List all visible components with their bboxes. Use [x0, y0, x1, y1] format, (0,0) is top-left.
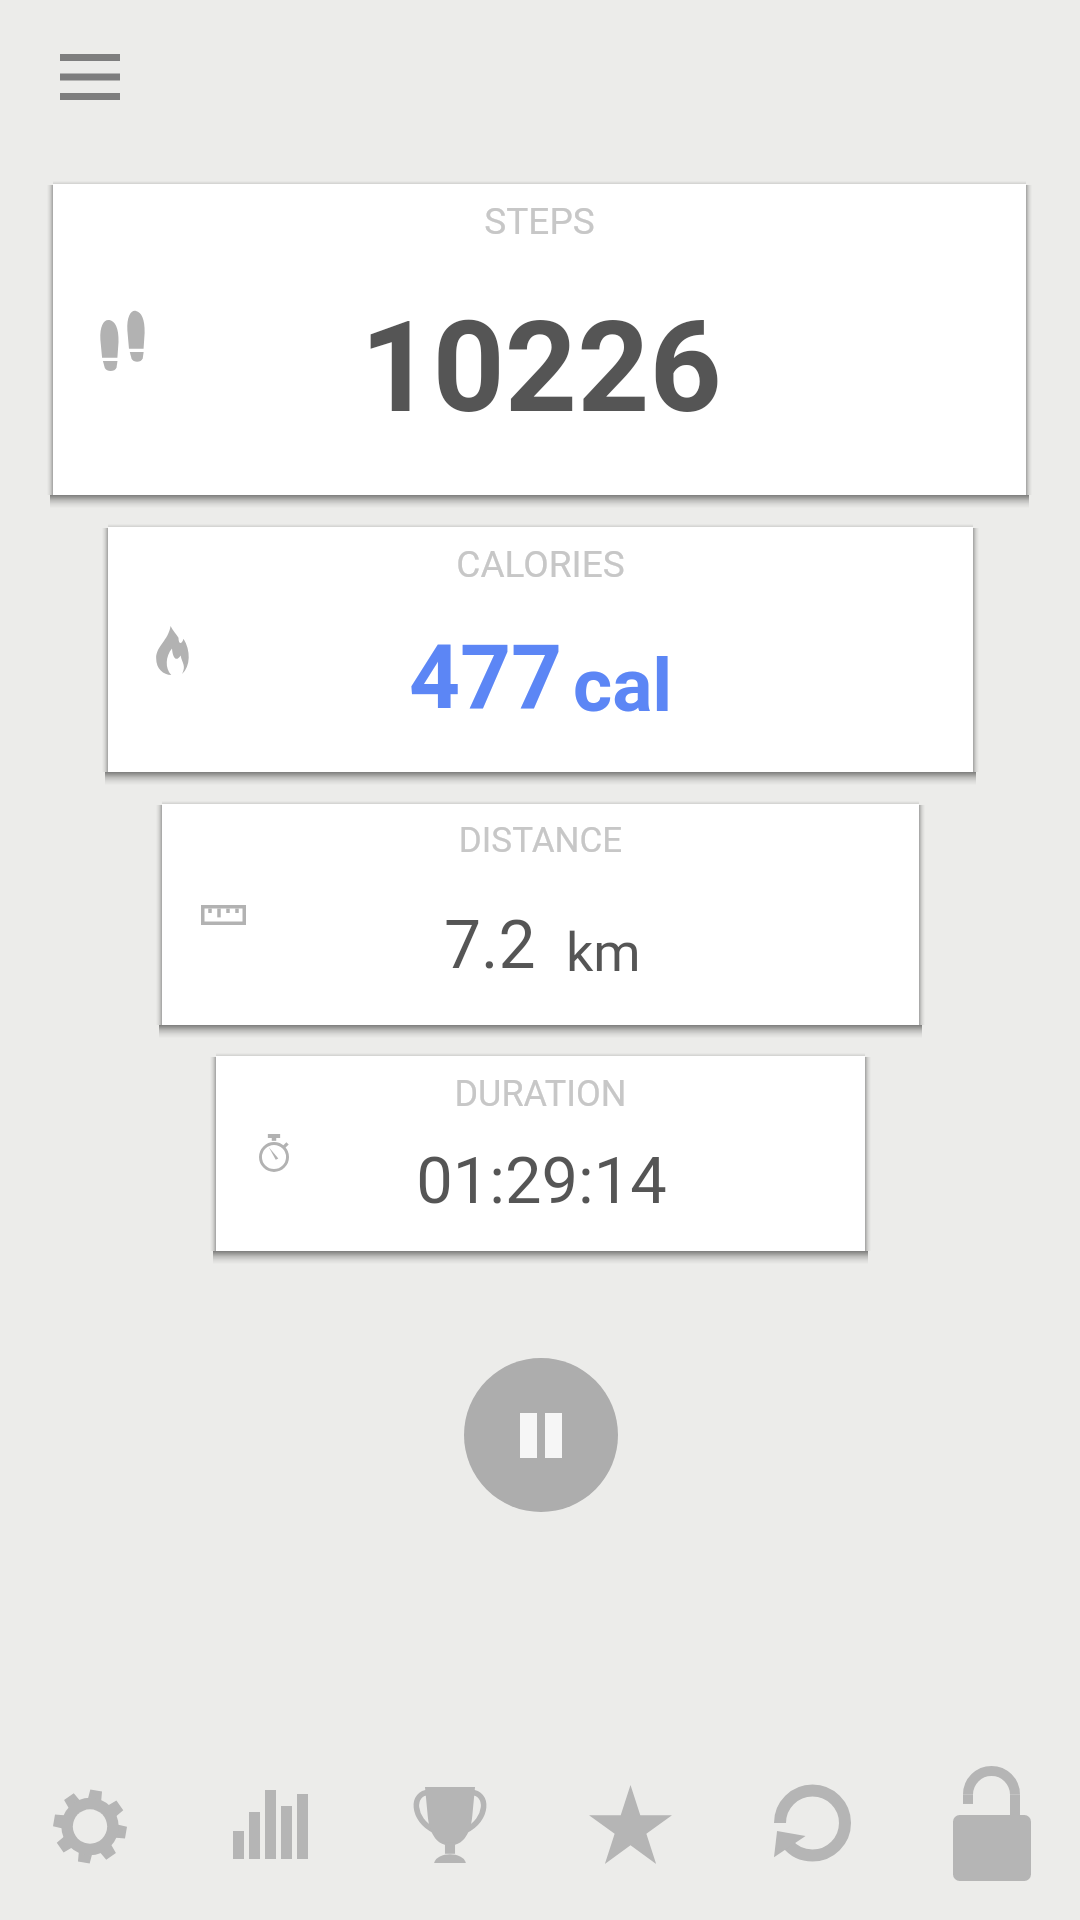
staticText: DISTANCE — [162, 820, 919, 861]
staticText: 7.2 — [444, 907, 536, 984]
staticText: 10226 — [360, 294, 722, 442]
staticText: km — [566, 921, 641, 984]
button[interactable]: CALORIES — [108, 527, 973, 772]
staticText: 01:29:14 — [416, 1143, 667, 1219]
button[interactable]: STEPS — [53, 184, 1026, 495]
button[interactable]: Settings — [0, 1736, 180, 1916]
button[interactable]: Statistics — [181, 1734, 361, 1914]
staticText: 477 — [409, 625, 563, 729]
button[interactable]: Favourites — [540, 1734, 720, 1914]
button[interactable]: Lock screen — [902, 1733, 1080, 1913]
button[interactable]: Pause workout — [464, 1358, 618, 1512]
staticText: cal — [573, 641, 673, 729]
staticText: CALORIES — [108, 543, 973, 586]
button[interactable]: DURATION — [216, 1056, 865, 1251]
button[interactable]: DISTANCE — [162, 804, 919, 1025]
staticText: STEPS — [53, 200, 1026, 243]
button[interactable]: Achievements — [360, 1734, 540, 1914]
button[interactable]: Open navigation menu — [30, 24, 150, 129]
staticText: DURATION — [216, 1073, 865, 1115]
button[interactable]: Reset — [722, 1733, 902, 1913]
